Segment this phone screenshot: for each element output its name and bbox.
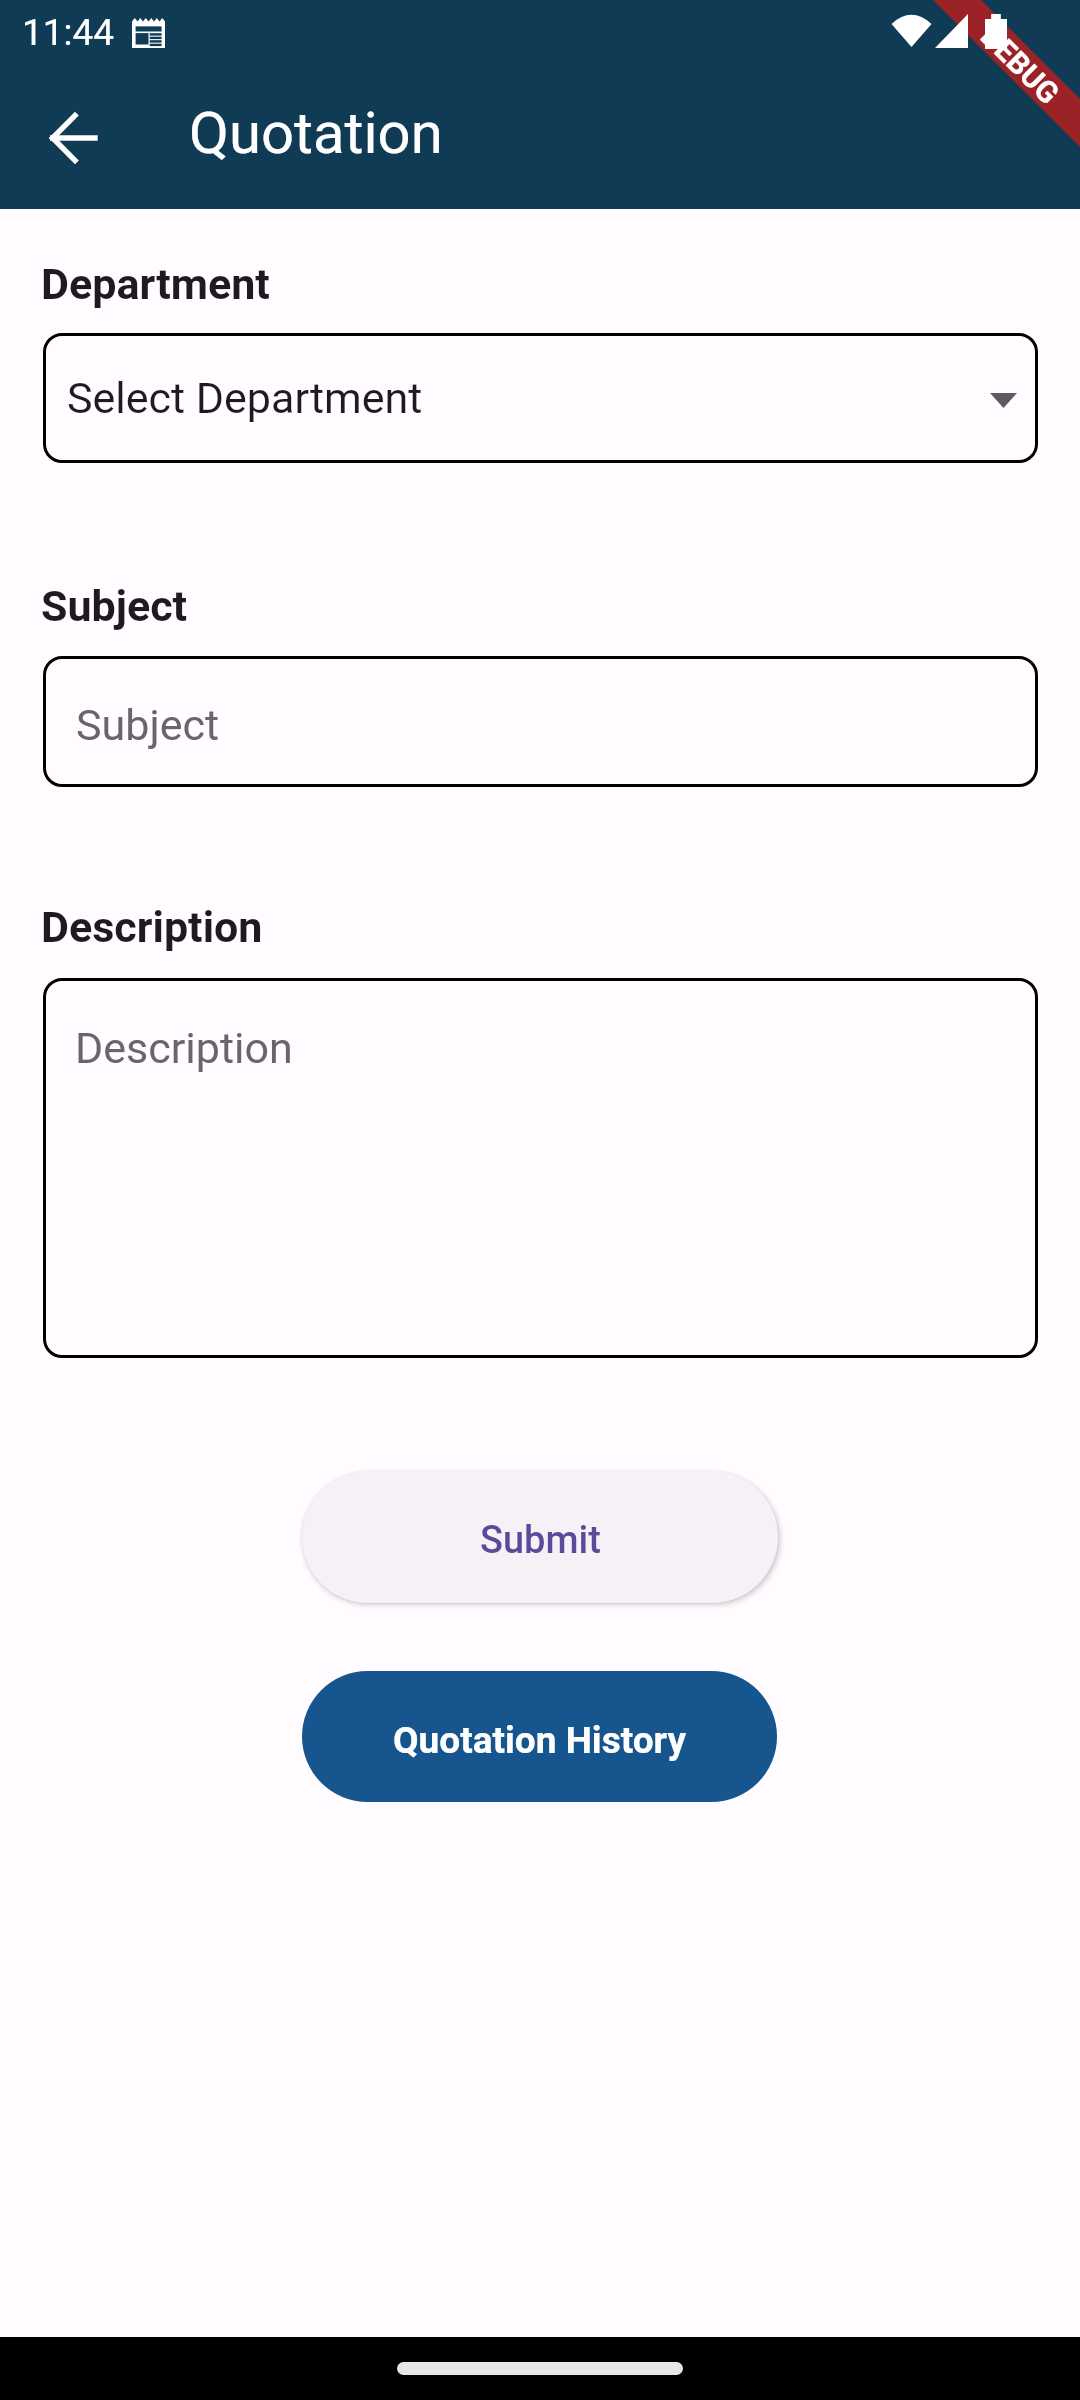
staticText: Subject — [76, 700, 220, 750]
button[interactable]: Submit — [302, 1471, 778, 1603]
button[interactable]: Subject — [43, 656, 1038, 787]
button[interactable]: Description — [43, 978, 1038, 1358]
button[interactable]: Quotation History — [302, 1671, 777, 1802]
staticText: Description — [41, 902, 263, 952]
staticText: Description — [75, 1023, 293, 1073]
button[interactable]: Back — [27, 92, 119, 184]
staticText: Quotation — [189, 99, 443, 167]
staticText: Select Department — [67, 373, 423, 423]
staticText: 11:44 — [22, 11, 115, 54]
staticText: DEBUG — [974, 18, 1066, 110]
staticText: Quotation History — [393, 1719, 687, 1762]
staticText: Subject — [41, 581, 188, 631]
button[interactable]: Select Department — [43, 333, 1038, 463]
staticText: Department — [41, 259, 270, 309]
staticText: Submit — [480, 1518, 601, 1563]
